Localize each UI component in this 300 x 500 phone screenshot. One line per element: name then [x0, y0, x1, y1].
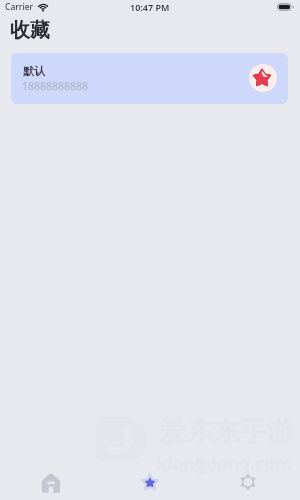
staticText: 10:47 PM — [130, 1, 170, 13]
staticText: 默认 — [23, 64, 45, 78]
button[interactable]: Home — [29, 465, 73, 500]
staticText: 收藏 — [10, 18, 50, 43]
button[interactable]: Settings — [226, 464, 270, 500]
button[interactable]: Favourite — [249, 64, 277, 92]
staticText: 18888888888 — [22, 79, 89, 93]
button[interactable]: 默认 — [11, 53, 288, 104]
staticText: Carrier — [5, 1, 34, 13]
button[interactable]: Favorites — [128, 464, 172, 500]
